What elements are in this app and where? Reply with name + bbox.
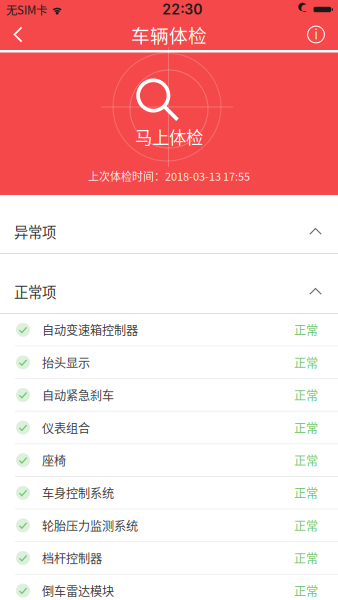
staticText: 无SIM卡 [6,1,47,18]
button[interactable]: 座椅 [0,444,338,477]
staticText: 抬头显示 [42,354,90,371]
button[interactable]: 自动变速箱控制器 [0,314,338,347]
staticText: 马上体检 [135,124,203,149]
button[interactable]: 说明 [293,19,338,50]
staticText: 正常项 [14,281,56,302]
staticText: 正常 [294,549,318,567]
button[interactable]: 马上体检 [0,52,338,195]
staticText: 正常 [294,419,318,436]
button[interactable]: 倒车雷达模块 [0,575,338,600]
staticText: 轮胎压力监测系统 [42,517,138,534]
staticText: 车辆体检 [131,21,207,48]
button[interactable]: 车身控制系统 [0,477,338,510]
staticText: 正常 [294,517,318,534]
staticText: 正常 [294,354,318,371]
staticText: 正常 [294,386,318,404]
staticText: i [314,26,317,42]
button[interactable]: 档杆控制器 [0,542,338,575]
button[interactable]: 异常项 [0,210,338,253]
button[interactable]: 返回 [0,19,37,50]
staticText: 车身控制系统 [42,484,114,502]
staticText: 22:30 [162,1,202,18]
button[interactable]: 抬头显示 [0,347,338,379]
staticText: 档杆控制器 [42,549,102,567]
staticText: 正常 [294,321,318,339]
staticText: 异常项 [14,221,56,242]
staticText: 自动变速箱控制器 [42,321,138,339]
staticText: 正常 [294,582,318,599]
staticText: 座椅 [42,451,66,469]
staticText: 仪表组合 [42,419,90,436]
staticText: 正常 [294,484,318,502]
button[interactable]: 正常项 [0,270,338,313]
staticText: 倒车雷达模块 [42,582,114,599]
staticText: 上次体检时间：2018-03-13 17:55 [88,168,250,184]
staticText: 自动紧急刹车 [42,386,114,404]
button[interactable]: 轮胎压力监测系统 [0,510,338,542]
button[interactable]: 仪表组合 [0,412,338,444]
staticText: 正常 [294,451,318,469]
button[interactable]: 自动紧急刹车 [0,379,338,412]
